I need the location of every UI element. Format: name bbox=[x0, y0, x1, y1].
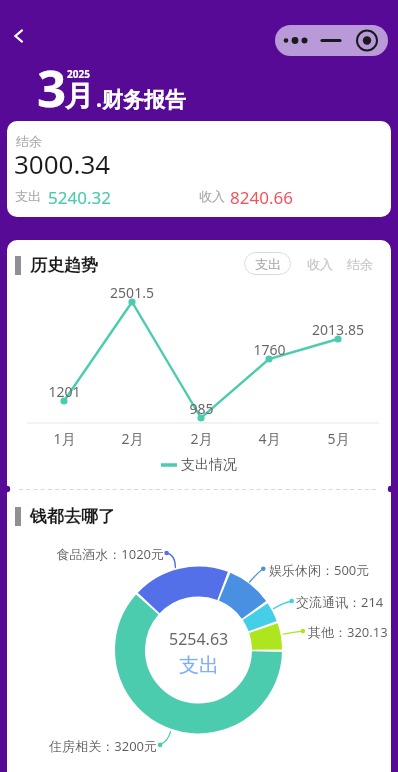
staticText: 2013.85 bbox=[312, 320, 364, 339]
staticText: 1月 bbox=[53, 429, 76, 448]
staticText: 1760 bbox=[253, 340, 286, 359]
button[interactable]: 收入 bbox=[305, 252, 335, 275]
staticText: 2025 bbox=[67, 67, 90, 81]
staticText: 交流通讯：214 bbox=[296, 593, 384, 611]
staticText: 食品酒水：1020元 bbox=[56, 545, 164, 563]
staticText: 历史趋势 bbox=[30, 255, 98, 276]
staticText: 5254.63 bbox=[169, 628, 229, 650]
staticText: 5240.32 bbox=[48, 186, 111, 209]
staticText: 1201 bbox=[48, 382, 81, 401]
staticText: 8240.66 bbox=[230, 186, 293, 209]
button[interactable]: Menu bbox=[275, 25, 388, 56]
staticText: 支出 bbox=[255, 256, 281, 272]
staticText: 住房相关：3200元 bbox=[49, 737, 157, 755]
staticText: 3000.34 bbox=[14, 146, 111, 181]
staticText: 结余 bbox=[347, 256, 373, 272]
button[interactable]: Back bbox=[2, 19, 36, 53]
staticText: 收入 bbox=[199, 188, 225, 204]
staticText: 2月 bbox=[190, 429, 213, 448]
staticText: 支出情况 bbox=[181, 456, 237, 474]
staticText: 支出 bbox=[179, 653, 219, 678]
staticText: 2501.5 bbox=[110, 283, 154, 302]
button[interactable]: 结余 bbox=[345, 252, 375, 275]
staticText: 钱都去哪了 bbox=[30, 506, 115, 527]
button[interactable]: 支出 bbox=[244, 252, 291, 275]
staticText: 3 bbox=[37, 52, 67, 121]
staticText: 支出 bbox=[15, 188, 41, 204]
staticText: 2月 bbox=[121, 429, 144, 448]
staticText: 娱乐休闲：500元 bbox=[269, 561, 370, 579]
staticText: 5月 bbox=[327, 429, 350, 448]
staticText: .财务报告 bbox=[96, 85, 186, 114]
staticText: 985 bbox=[189, 399, 214, 418]
staticText: 月 bbox=[65, 78, 94, 115]
staticText: 4月 bbox=[258, 429, 281, 448]
staticText: 收入 bbox=[307, 256, 333, 272]
staticText: 其他：320.13 bbox=[308, 623, 388, 641]
button[interactable]: 结余 bbox=[7, 121, 391, 217]
staticText: 结余 bbox=[16, 133, 42, 149]
